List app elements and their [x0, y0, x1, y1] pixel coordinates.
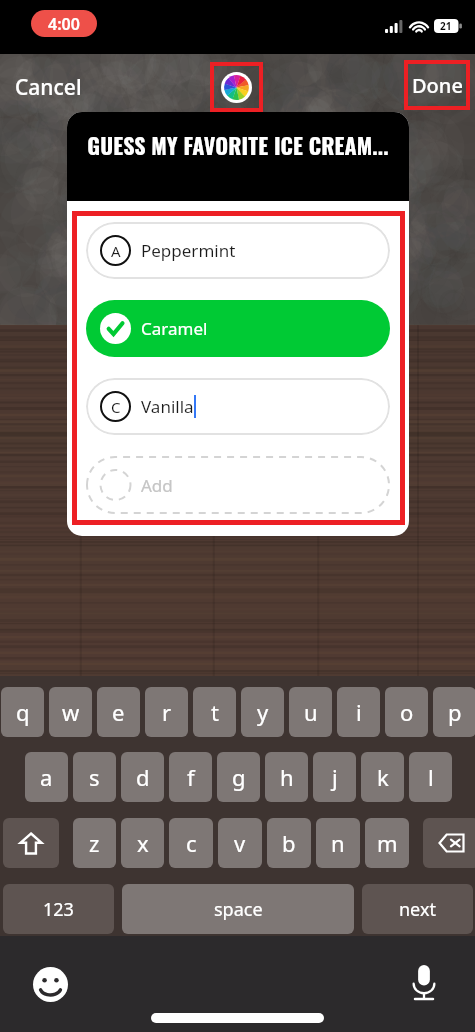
button[interactable]: r: [145, 687, 188, 737]
button[interactable]: next: [362, 884, 473, 934]
staticText: m: [377, 828, 398, 858]
button[interactable]: d: [121, 752, 164, 802]
button[interactable]: f: [169, 752, 212, 802]
button[interactable]: space: [122, 884, 354, 934]
button[interactable]: y: [241, 687, 284, 737]
button[interactable]: b: [267, 818, 311, 868]
staticText: y: [257, 697, 269, 727]
button[interactable]: s: [73, 752, 116, 802]
staticText: 21: [440, 19, 452, 33]
button[interactable]: m: [365, 818, 409, 868]
button[interactable]: A: [86, 222, 390, 279]
staticText: space: [214, 897, 263, 922]
staticText: GUESS MY FAVORITE ICE CREAM...: [87, 129, 389, 162]
staticText: j: [332, 762, 338, 792]
staticText: next: [399, 897, 436, 922]
button[interactable]: C: [86, 378, 390, 435]
staticText: Peppermint: [141, 239, 236, 262]
button[interactable]: h: [265, 752, 308, 802]
button[interactable]: u: [289, 687, 332, 737]
button[interactable]: 4:00: [31, 10, 97, 37]
staticText: w: [62, 697, 80, 727]
staticText: a: [40, 762, 53, 792]
staticText: i: [356, 697, 362, 727]
staticText: c: [186, 828, 197, 858]
staticText: p: [448, 697, 462, 727]
button[interactable]: Backspace: [423, 818, 475, 868]
staticText: 4:00: [48, 13, 80, 35]
button[interactable]: c: [169, 818, 213, 868]
button[interactable]: x: [121, 818, 164, 868]
button[interactable]: p: [433, 687, 475, 737]
staticText: f: [187, 762, 195, 792]
button[interactable]: t: [193, 687, 236, 737]
button[interactable]: 123: [3, 884, 114, 934]
button[interactable]: Cancel: [7, 66, 90, 109]
button[interactable]: w: [49, 687, 92, 737]
staticText: Cancel: [15, 73, 82, 102]
button[interactable]: Shift: [3, 818, 59, 868]
staticText: 123: [43, 897, 74, 922]
staticText: A: [111, 241, 121, 261]
staticText: v: [234, 828, 246, 858]
button[interactable]: v: [218, 818, 262, 868]
button[interactable]: i: [337, 687, 380, 737]
button[interactable]: q: [1, 687, 44, 737]
staticText: Add: [141, 474, 173, 497]
button[interactable]: k: [361, 752, 404, 802]
staticText: s: [89, 762, 100, 792]
button[interactable]: o: [385, 687, 428, 737]
button[interactable]: l: [409, 752, 452, 802]
button[interactable]: a: [25, 752, 68, 802]
button[interactable]: Caramel: [86, 300, 390, 357]
staticText: Caramel: [141, 317, 208, 340]
staticText: e: [112, 697, 125, 727]
staticText: t: [211, 697, 219, 727]
staticText: n: [331, 828, 345, 858]
staticText: Done: [412, 72, 463, 99]
staticText: C: [111, 397, 121, 417]
button[interactable]: z: [73, 818, 116, 868]
staticText: b: [282, 828, 296, 858]
button[interactable]: j: [313, 752, 356, 802]
button[interactable]: Add: [86, 456, 390, 514]
button[interactable]: n: [316, 818, 360, 868]
button[interactable]: g: [217, 752, 260, 802]
staticText: k: [377, 762, 389, 792]
staticText: h: [280, 762, 294, 792]
staticText: u: [304, 697, 318, 727]
staticText: z: [89, 828, 100, 858]
button[interactable]: Emoji: [27, 961, 73, 1007]
staticText: d: [136, 762, 150, 792]
staticText: r: [162, 697, 172, 727]
staticText: g: [232, 762, 246, 792]
button[interactable]: e: [97, 687, 140, 737]
staticText: Vanilla: [141, 395, 194, 418]
staticText: o: [400, 697, 414, 727]
button[interactable]: Dictate: [401, 960, 447, 1006]
staticText: l: [428, 762, 434, 792]
staticText: q: [16, 697, 30, 727]
button[interactable]: Colour picker: [210, 62, 263, 112]
button[interactable]: Done: [404, 60, 470, 110]
staticText: x: [137, 828, 149, 858]
